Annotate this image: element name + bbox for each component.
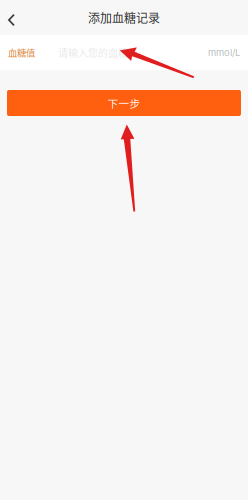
staticText: 请输入您的血糖值	[58, 45, 138, 60]
staticText: 下一步	[107, 95, 140, 111]
staticText: 血糖值	[8, 46, 35, 59]
button[interactable]: 下一步	[7, 90, 241, 116]
staticText: mmol/L	[208, 47, 240, 58]
staticText: 添加血糖记录	[88, 9, 160, 26]
button[interactable]: Back	[0, 0, 30, 35]
